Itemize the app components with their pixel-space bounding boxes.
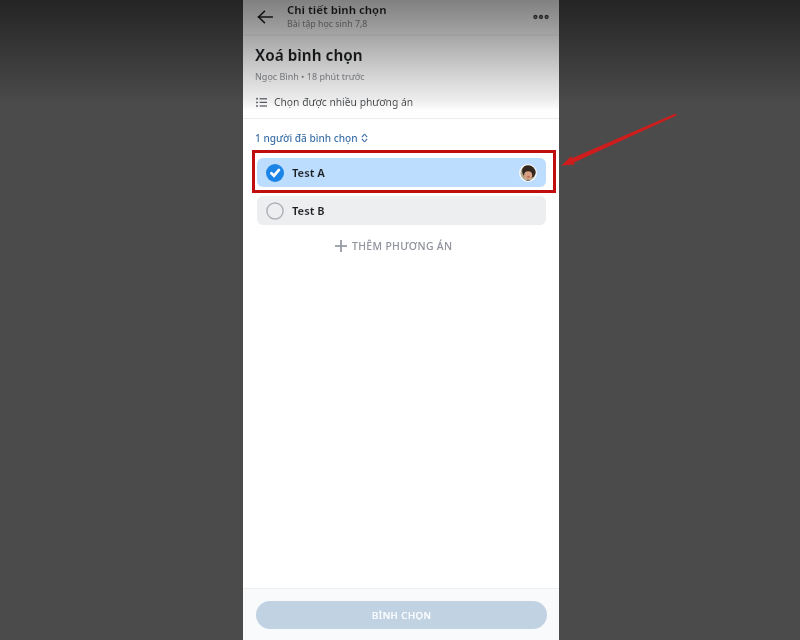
staticText: 1 người đã bình chọn [255,131,358,145]
staticText: Ngọc Bình • 18 phút trước [255,70,365,82]
button[interactable]: 1 người đã bình chọn [255,131,368,145]
button[interactable]: BÌNH CHỌN [256,601,547,629]
button[interactable]: Back [256,8,274,26]
button[interactable]: Test B [257,196,546,225]
staticText: Test B [292,203,325,218]
staticText: Test A [292,165,325,180]
staticText: Chọn được nhiều phương án [274,95,414,109]
button[interactable]: More options [531,7,551,27]
staticText: Bài tập học sinh 7,8 [287,18,368,30]
staticText: BÌNH CHỌN [372,609,432,622]
staticText: THÊM PHƯƠNG ÁN [352,239,453,253]
button[interactable]: THÊM PHƯƠNG ÁN [335,236,453,256]
button[interactable]: Test A [257,158,546,187]
staticText: Xoá bình chọn [255,45,363,66]
staticText: Chi tiết bình chọn [287,2,387,17]
